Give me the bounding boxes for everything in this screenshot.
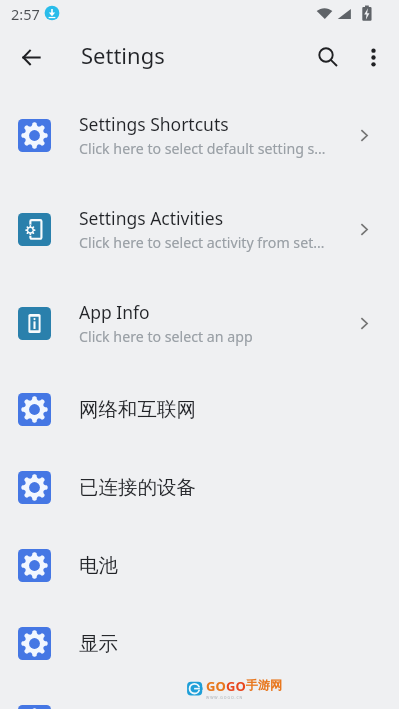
staticText: Click here to select default setting s… [79, 139, 326, 158]
button[interactable]: Search [308, 37, 348, 77]
staticText: Settings Shortcuts [79, 112, 229, 136]
button[interactable]: Settings Activities [0, 182, 399, 276]
staticText: 网络和互联网 [79, 397, 196, 422]
staticText: Settings Activities [79, 206, 224, 230]
button[interactable]: 显示 [0, 604, 399, 682]
staticText: GO [226, 677, 246, 695]
button[interactable]: 网络和互联网 [0, 370, 399, 448]
staticText: 2:57 [11, 4, 40, 24]
staticText: 已连接的设备 [79, 475, 196, 500]
button[interactable]: 电池 [0, 526, 399, 604]
staticText: Click here to select an app [79, 327, 253, 346]
staticText: 电池 [79, 553, 118, 578]
staticText: Click here to select activity from set… [79, 233, 325, 252]
staticText: Settings [81, 40, 165, 70]
staticText: 手游网 [246, 677, 282, 692]
button[interactable]: App Info [0, 276, 399, 370]
button[interactable]: Back [11, 37, 51, 77]
staticText: App Info [79, 300, 150, 324]
button[interactable]: Settings Shortcuts [0, 88, 399, 182]
button[interactable]: 已连接的设备 [0, 448, 399, 526]
button[interactable]: 声音 [0, 682, 399, 709]
staticText: GO [206, 677, 226, 695]
staticText: 显示 [79, 631, 118, 656]
staticText: W W W . G O G O . C N [206, 695, 243, 700]
button[interactable]: More options [353, 37, 393, 77]
